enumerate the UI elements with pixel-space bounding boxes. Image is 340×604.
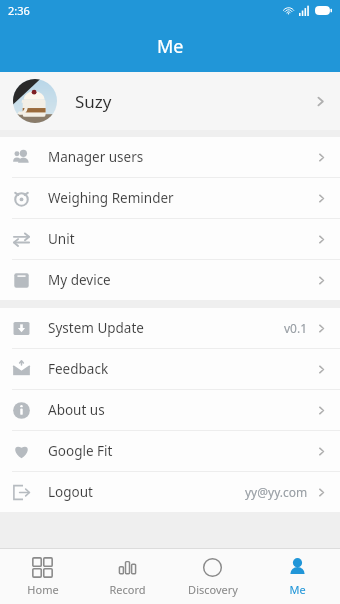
staticText: Suzy — [75, 90, 112, 113]
staticText: About us — [48, 401, 105, 419]
staticText: Google Fit — [48, 442, 113, 460]
staticText: 2:36 — [8, 3, 30, 18]
staticText: Record — [109, 582, 146, 597]
staticText: Logout — [48, 483, 93, 501]
staticText: My device — [48, 271, 111, 289]
staticText: Me — [157, 34, 184, 59]
staticText: Unit — [48, 230, 75, 248]
button[interactable]: Weighing Reminder — [0, 178, 340, 218]
button[interactable]: Feedback — [0, 349, 340, 389]
button[interactable]: My device — [0, 260, 340, 300]
button[interactable]: Google Fit — [0, 431, 340, 471]
button[interactable]: About us — [0, 390, 340, 430]
staticText: Manager users — [48, 148, 144, 166]
button[interactable]: Logout — [0, 472, 340, 512]
staticText: Me — [289, 582, 306, 597]
button[interactable]: Home — [0, 557, 85, 597]
button[interactable]: Manager users — [0, 137, 340, 177]
staticText: System Update — [48, 319, 144, 337]
staticText: v0.1 — [284, 320, 308, 336]
button[interactable]: Unit — [0, 219, 340, 259]
button[interactable]: Suzy — [0, 72, 340, 130]
staticText: Feedback — [48, 360, 109, 378]
staticText: Discovery — [188, 582, 238, 597]
button[interactable]: Me — [255, 557, 340, 597]
button[interactable]: Discovery — [170, 557, 255, 597]
button[interactable]: Record — [85, 557, 170, 597]
staticText: Home — [27, 582, 59, 597]
staticText: yy@yy.com — [245, 484, 308, 500]
staticText: Weighing Reminder — [48, 189, 174, 207]
button[interactable]: System Update — [0, 308, 340, 348]
